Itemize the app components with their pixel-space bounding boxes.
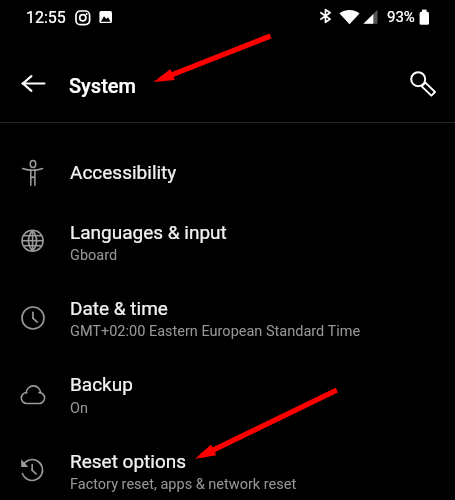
staticText: Date & time	[70, 297, 168, 319]
button[interactable]	[0, 432, 455, 500]
button[interactable]: Search	[400, 62, 440, 102]
staticText: Gboard	[70, 247, 118, 264]
staticText: Reset options	[70, 450, 187, 472]
staticText: Languages & input	[70, 221, 227, 243]
button[interactable]	[0, 143, 455, 203]
button[interactable]	[0, 203, 455, 279]
staticText: Backup	[70, 373, 133, 395]
button[interactable]	[0, 279, 455, 355]
staticText: On	[70, 400, 88, 417]
staticText: Accessibility	[70, 161, 177, 183]
staticText: GMT+02:00 Eastern European Standard Time	[70, 323, 361, 340]
button[interactable]	[0, 356, 455, 432]
button[interactable]: Navigate up	[12, 63, 54, 105]
staticText: 12:55	[26, 8, 66, 27]
staticText: Factory reset, apps & network reset	[70, 476, 297, 493]
staticText: 93%	[387, 8, 415, 26]
staticText: System	[69, 74, 136, 97]
